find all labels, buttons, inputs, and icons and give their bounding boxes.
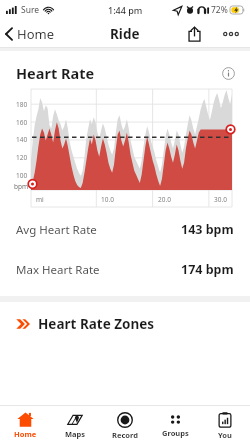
staticText: Record [112, 430, 138, 440]
button[interactable]: Max Heart Rate [0, 260, 250, 279]
button[interactable]: You [200, 409, 250, 443]
staticText: 160 [16, 118, 28, 127]
staticText: 180 [16, 100, 28, 109]
staticText: Home [14, 429, 37, 439]
staticText: 143 bpm [181, 221, 234, 238]
button[interactable]: Groups [150, 410, 200, 441]
button[interactable]: Maps [50, 409, 100, 442]
staticText: 174 bpm [181, 261, 234, 278]
staticText: Avg Heart Rate [16, 222, 97, 238]
staticText: 120 [16, 153, 28, 162]
staticText: 100 [16, 171, 28, 180]
button[interactable]: Share [183, 21, 206, 47]
staticText: Maps [65, 429, 86, 439]
staticText: Sure [21, 4, 40, 16]
button[interactable]: Home [0, 409, 50, 442]
staticText: Max Heart Rate [16, 262, 100, 278]
staticText: 1:44 pm [108, 4, 143, 16]
staticText: Home [17, 25, 54, 43]
staticText: Heart Rate Zones [38, 315, 155, 333]
staticText: You [218, 430, 232, 440]
staticText: bpm [14, 182, 29, 191]
staticText: 72% [211, 4, 228, 16]
staticText: 10.0 [101, 195, 114, 204]
button[interactable]: Avg Heart Rate [0, 220, 250, 239]
staticText: 140 [16, 135, 28, 144]
staticText: mi [36, 195, 44, 204]
button[interactable]: Record [100, 409, 150, 443]
staticText: 20.0 [158, 195, 171, 204]
button[interactable]: More options [217, 23, 245, 45]
button[interactable]: Information [219, 64, 237, 82]
button[interactable]: Home [0, 20, 60, 48]
staticText: Groups [162, 428, 189, 438]
button[interactable]: Heart Rate Zones [0, 302, 250, 405]
staticText: 30.0 [214, 195, 227, 204]
staticText: Heart Rate [16, 63, 95, 83]
staticText: Ride [110, 25, 140, 43]
